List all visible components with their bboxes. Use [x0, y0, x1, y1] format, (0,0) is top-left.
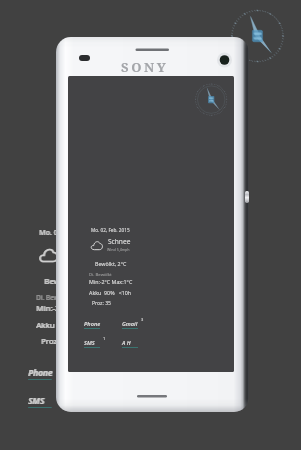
- staticText: Akku 90% <10h: [36, 320, 99, 331]
- staticText: Schnee: [64, 242, 98, 255]
- staticText: Min:-2°C Max:1°C: [37, 303, 102, 314]
- button[interactable]: SMS: [76, 336, 108, 351]
- button[interactable]: A H: [114, 336, 146, 351]
- button[interactable]: A H: [74, 390, 121, 412]
- staticText: Mo. 02, Feb. 2015: [40, 227, 98, 237]
- staticText: Phone: [84, 320, 101, 328]
- button[interactable]: A H: [73, 390, 120, 412]
- staticText: Mo. 02, Feb. 2015: [39, 227, 97, 237]
- staticText: Akku 90% <10h: [89, 289, 132, 296]
- staticText: Proz: 35: [41, 336, 70, 346]
- staticText: Proz: 35: [41, 336, 70, 346]
- staticText: Wind 5,4mph: [64, 258, 98, 265]
- staticText: SMS: [29, 395, 46, 406]
- button[interactable]: Gmail: [73, 362, 120, 384]
- staticText: Min:-2°C Max:1°C: [36, 303, 101, 314]
- staticText: Akku 90% <10h: [36, 320, 99, 331]
- staticText: 3: [141, 317, 144, 322]
- staticText: Mo. 02, Feb. 2015: [39, 227, 97, 237]
- button[interactable]: SMS: [16, 390, 63, 412]
- staticText: Phone: [28, 367, 53, 378]
- button[interactable]: Power: [245, 191, 249, 203]
- staticText: Schnee: [64, 242, 98, 255]
- staticText: A H: [85, 395, 99, 406]
- button[interactable]: A H: [73, 390, 120, 412]
- staticText: Phone: [29, 367, 54, 378]
- staticText: 1: [103, 336, 106, 341]
- staticText: Wind 5,4mph: [63, 258, 97, 265]
- staticText: A H: [122, 339, 131, 347]
- button[interactable]: Gmail: [114, 317, 146, 332]
- button[interactable]: Phone: [76, 317, 109, 332]
- button[interactable]: Gmail: [74, 362, 121, 384]
- button[interactable]: Gmail: [73, 362, 120, 384]
- staticText: 1: [58, 390, 62, 398]
- staticText: Gmail: [122, 320, 138, 328]
- staticText: SONY: [121, 58, 169, 76]
- staticText: Gmail: [85, 367, 108, 378]
- staticText: Mo. 02, Feb. 2015: [91, 227, 130, 233]
- staticText: Proz: 35: [42, 336, 71, 346]
- staticText: Schnee: [108, 237, 131, 246]
- staticText: Schnee: [65, 242, 99, 255]
- staticText: Bewölkt, 2°C: [44, 276, 91, 287]
- button[interactable]: Phone: [16, 362, 65, 384]
- staticText: Wind 5,4mph: [107, 247, 130, 252]
- staticText: A H: [85, 395, 99, 406]
- staticText: Gmail: [85, 367, 108, 378]
- staticText: Wind 5,4mph: [63, 258, 97, 265]
- staticText: SMS: [28, 395, 45, 406]
- staticText: SMS: [84, 339, 95, 347]
- staticText: Di. Bewölkt: [89, 271, 112, 277]
- button[interactable]: SMS: [17, 390, 64, 412]
- staticText: Bewölkt, 2°C: [95, 260, 127, 267]
- staticText: Di. Bewölkt: [36, 293, 70, 302]
- button[interactable]: Phone: [17, 362, 66, 384]
- staticText: Min:-2°C Max:1°C: [36, 303, 101, 314]
- staticText: 1: [57, 390, 61, 398]
- staticText: Proz: 35: [92, 300, 112, 307]
- button[interactable]: SMS: [16, 390, 63, 412]
- staticText: Di. Bewölkt: [36, 293, 70, 302]
- staticText: SMS: [28, 395, 45, 406]
- staticText: 1: [57, 390, 61, 398]
- staticText: Bewölkt, 2°C: [45, 276, 92, 287]
- staticText: Gmail: [86, 367, 109, 378]
- button[interactable]: Phone: [16, 362, 65, 384]
- staticText: Min:-2°C Max:1°C: [89, 278, 133, 285]
- staticText: Di. Bewölkt: [37, 293, 71, 302]
- staticText: Akku 90% <10h: [37, 320, 100, 331]
- staticText: A H: [86, 395, 100, 406]
- staticText: Bewölkt, 2°C: [44, 276, 91, 287]
- staticText: Phone: [28, 367, 53, 378]
